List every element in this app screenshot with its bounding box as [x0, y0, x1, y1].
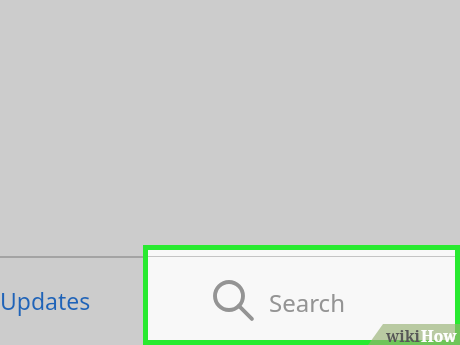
- staticText: wiki: [386, 325, 421, 345]
- staticText: How: [421, 325, 457, 345]
- staticText: Updates: [0, 285, 91, 316]
- button[interactable]: Search: [148, 250, 455, 340]
- staticText: Search: [269, 286, 345, 319]
- button[interactable]: Updates: [0, 255, 143, 345]
- other: Search: [209, 286, 257, 334]
